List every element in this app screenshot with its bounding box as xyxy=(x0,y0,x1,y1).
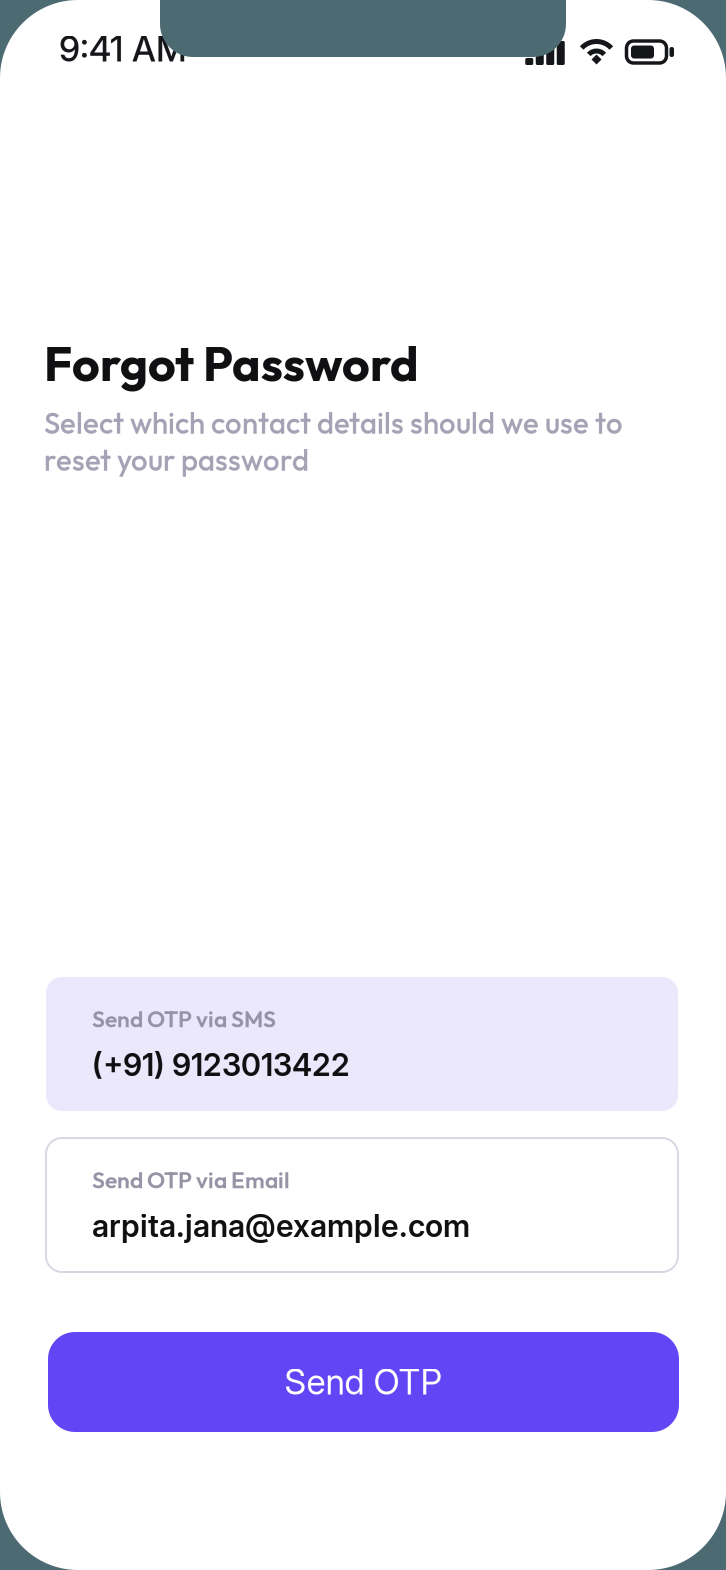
button[interactable]: Send OTP via Email xyxy=(46,1138,678,1272)
button[interactable]: Send OTP via SMS xyxy=(46,977,678,1111)
staticText: reset your password xyxy=(44,441,309,478)
button[interactable]: Send OTP xyxy=(48,1332,679,1432)
staticText: arpita.jana@example.com xyxy=(92,1207,470,1244)
staticText: Select which contact details should we u… xyxy=(44,404,623,441)
staticText: Send OTP via SMS xyxy=(92,1005,276,1033)
staticText: Forgot Password xyxy=(44,333,419,393)
staticText: (+91) 9123013422 xyxy=(92,1046,350,1083)
staticText: 9:41 AM xyxy=(59,28,187,70)
staticText: Send OTP via Email xyxy=(92,1166,290,1194)
staticText: Send OTP xyxy=(284,1361,442,1403)
